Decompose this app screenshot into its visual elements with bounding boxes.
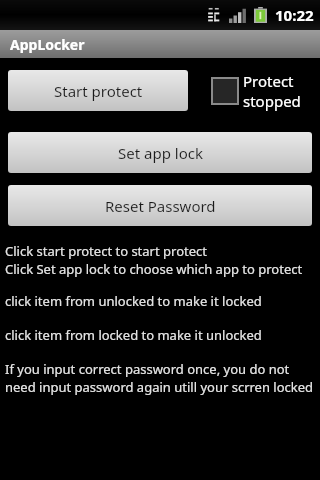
button[interactable]: Reset Password: [8, 185, 312, 226]
button[interactable]: Start protect: [8, 70, 188, 111]
staticText: click item from unlocked to make it lock…: [5, 292, 262, 310]
staticText: Start protect: [54, 81, 143, 101]
staticText: Set app lock: [118, 143, 203, 163]
staticText: Reset Password: [105, 196, 216, 216]
staticText: 10:22: [275, 5, 314, 25]
staticText: AppLocker: [10, 35, 85, 54]
staticText: Protect: [243, 71, 294, 91]
staticText: Click Set app lock to choose which app t…: [5, 260, 303, 278]
other: Protect toggle checkbox: [212, 78, 238, 104]
staticText: click item from locked to make it unlock…: [5, 326, 262, 344]
staticText: stopped: [243, 91, 301, 111]
staticText: Click start protect to start protect: [5, 242, 207, 260]
staticText: need input password again utill your scr…: [5, 378, 314, 396]
button[interactable]: Set app lock: [8, 132, 312, 173]
staticText: If you input correct password once, you …: [5, 360, 290, 378]
button[interactable]: Protect toggle checkbox: [212, 71, 301, 111]
